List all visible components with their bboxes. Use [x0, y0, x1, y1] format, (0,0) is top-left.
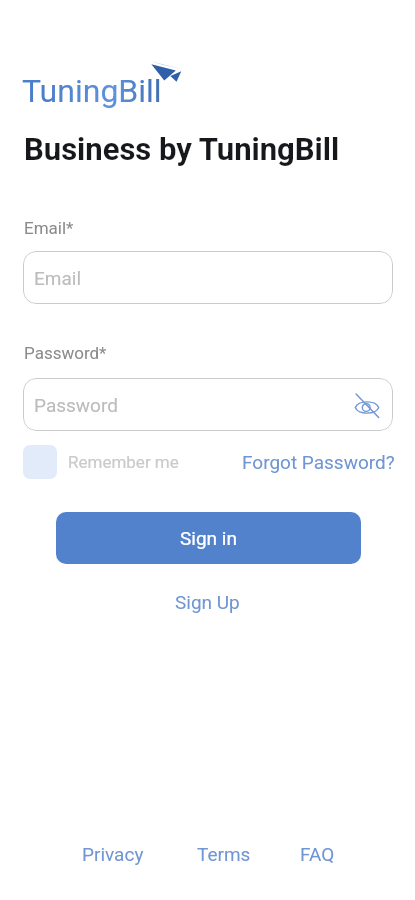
- button[interactable]: Email: [23, 251, 393, 304]
- button[interactable]: Remember me: [23, 445, 179, 479]
- button[interactable]: Privacy: [70, 835, 156, 873]
- button[interactable]: Sign Up: [159, 583, 256, 621]
- staticText: Forgot Password?: [242, 451, 395, 473]
- button[interactable]: FAQ: [288, 835, 347, 873]
- staticText: Sign in: [180, 527, 237, 549]
- staticText: FAQ: [300, 843, 335, 865]
- staticText: Remember me: [68, 452, 179, 472]
- staticText: Email: [34, 267, 82, 289]
- staticText: Email*: [24, 218, 74, 238]
- staticText: Business by TuningBill: [24, 131, 340, 167]
- staticText: Sign Up: [175, 591, 240, 613]
- staticText: Terms: [197, 843, 251, 865]
- button[interactable]: Sign in: [56, 512, 361, 564]
- staticText: Privacy: [82, 843, 144, 865]
- staticText: Password*: [24, 343, 107, 363]
- staticText: TuningBill: [22, 72, 162, 110]
- staticText: Password: [34, 394, 118, 416]
- button[interactable]: Password: [23, 378, 393, 431]
- button[interactable]: Forgot Password?: [242, 445, 395, 479]
- button[interactable]: Terms: [185, 835, 263, 873]
- button[interactable]: Toggle password visibility: [352, 390, 382, 420]
